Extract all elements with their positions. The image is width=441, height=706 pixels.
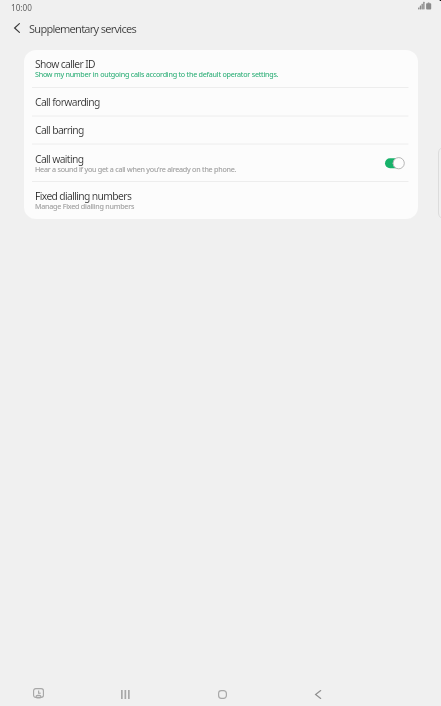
button[interactable]: Show caller ID [24, 50, 418, 87]
button[interactable]: Show keyboard [27, 681, 50, 704]
staticText: Manage Fixed dialling numbers [35, 201, 135, 211]
staticText: Supplementary services [29, 21, 136, 36]
staticText: Call forwarding [35, 95, 100, 109]
button[interactable]: Recent apps [113, 682, 137, 706]
button[interactable]: Fixed dialling numbers [24, 181, 418, 219]
button[interactable]: Navigate up [6, 17, 27, 38]
button[interactable]: Call forwarding [24, 87, 418, 116]
button[interactable]: Home [210, 682, 234, 706]
staticText: Fixed dialling numbers [35, 189, 132, 203]
button[interactable]: Call waiting [24, 144, 418, 182]
staticText: Show caller ID [35, 57, 95, 71]
button[interactable]: Back [306, 682, 330, 706]
staticText: Call barring [35, 123, 84, 137]
button[interactable]: Call barring [24, 116, 418, 144]
button[interactable]: Call waiting switch [385, 157, 404, 170]
staticText: Hear a sound if you get a call when you'… [35, 164, 237, 174]
staticText: Show my number in outgoing calls accordi… [35, 69, 279, 79]
staticText: 10:00 [11, 2, 32, 13]
staticText: Call waiting [35, 152, 84, 166]
